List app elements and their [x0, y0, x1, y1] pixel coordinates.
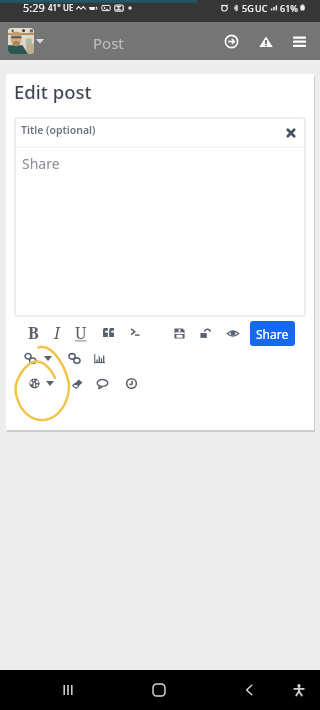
staticText: I [54, 322, 60, 344]
button[interactable]: Preview [221, 321, 245, 345]
button[interactable]: Accessibility [285, 676, 313, 704]
staticText: UC [255, 2, 268, 14]
button[interactable]: Quote [95, 319, 121, 345]
button[interactable]: Account [8, 28, 34, 54]
staticText: B [28, 322, 39, 344]
button[interactable]: Underline [68, 320, 94, 346]
button[interactable]: Account menu [34, 35, 46, 47]
staticText: Share [22, 154, 60, 173]
button[interactable]: Visibility [22, 371, 46, 395]
staticText: Title (optional) [21, 123, 96, 137]
button[interactable]: Erase [65, 371, 89, 395]
button[interactable]: Menu [288, 30, 311, 53]
button[interactable]: Bold [20, 320, 46, 346]
button[interactable]: Poll [87, 346, 111, 370]
button[interactable]: Save [167, 321, 191, 345]
staticText: 61% [280, 2, 298, 14]
staticText: Post [93, 33, 124, 53]
button[interactable]: Schedule [119, 371, 143, 395]
button[interactable]: Home [145, 676, 173, 704]
button[interactable]: Italic [44, 320, 70, 346]
button[interactable]: Attach [18, 346, 42, 370]
staticText: 41° [48, 2, 61, 13]
staticText: U [75, 322, 87, 344]
button[interactable]: Warning [254, 30, 277, 53]
staticText: Share [256, 326, 289, 342]
staticText: 5:29 [23, 0, 45, 15]
button[interactable]: Close [281, 123, 301, 143]
button[interactable]: Lock [193, 321, 217, 345]
button[interactable]: Comment [90, 371, 114, 395]
button[interactable]: Back [235, 676, 263, 704]
staticText: Edit post [14, 79, 92, 104]
button[interactable]: Attach menu [39, 349, 57, 367]
staticText: UE [63, 2, 74, 13]
staticText: 5G [242, 2, 254, 14]
button[interactable]: Share [250, 321, 295, 346]
button[interactable]: Link [62, 346, 86, 370]
button[interactable]: Submit [220, 30, 243, 53]
button[interactable]: Recents [54, 676, 82, 704]
button[interactable]: Visibility menu [41, 374, 59, 392]
button[interactable]: Code [122, 319, 148, 345]
